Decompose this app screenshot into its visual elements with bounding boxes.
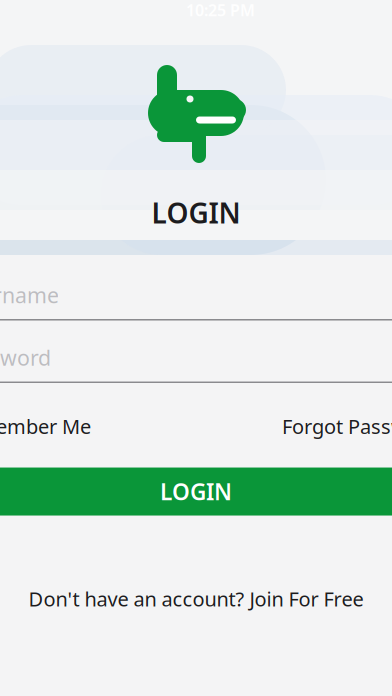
staticText: Password — [0, 343, 51, 372]
button[interactable]: Don't have an account? Join For Free — [0, 578, 392, 620]
staticText: 10:25 PM — [186, 0, 255, 21]
staticText: LOGIN — [151, 194, 240, 231]
button[interactable]: Forgot Password — [282, 407, 392, 446]
button[interactable]: LOGIN — [0, 468, 392, 516]
staticText: Remember Me — [0, 413, 91, 440]
button[interactable]: Remember Me — [0, 407, 91, 446]
staticText: Username — [0, 281, 59, 309]
staticText: Forgot Password — [282, 413, 392, 440]
staticText: Don't have an account? Join For Free — [28, 586, 363, 612]
staticText: LOGIN — [160, 476, 232, 507]
